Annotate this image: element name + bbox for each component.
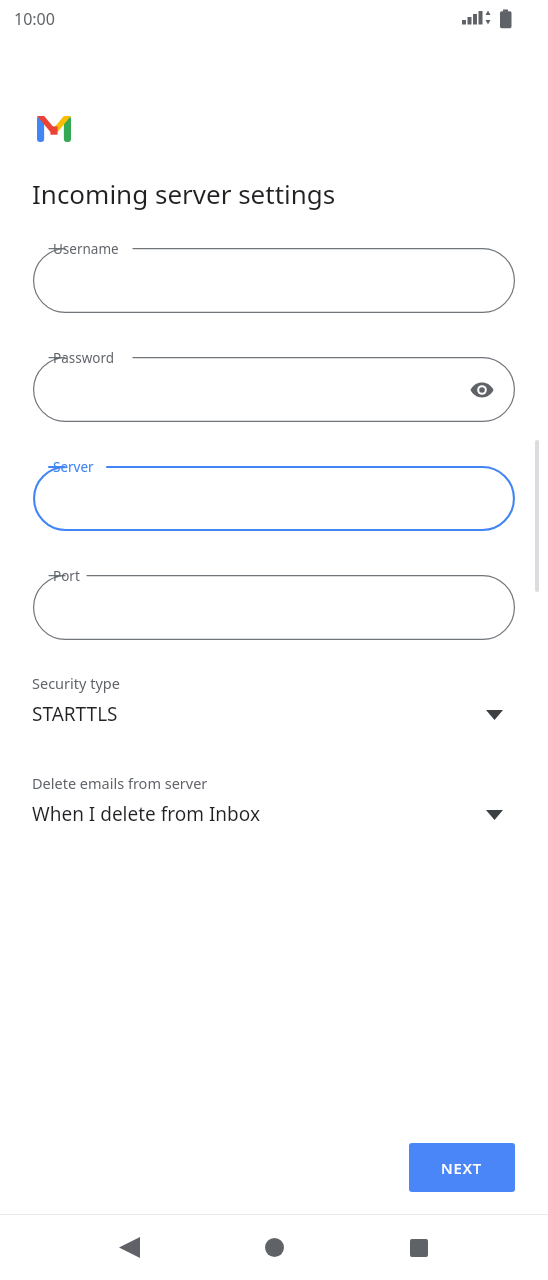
staticText: Incoming server settings xyxy=(32,176,336,211)
staticText: 10:00 xyxy=(14,8,55,30)
staticText: Security type xyxy=(32,673,120,693)
button[interactable]: Recent apps xyxy=(379,1215,459,1280)
button[interactable]: Port xyxy=(33,575,515,640)
button[interactable]: NEXT xyxy=(409,1143,515,1192)
staticText: NEXT xyxy=(441,1158,483,1178)
staticText: Password xyxy=(53,349,115,367)
button[interactable]: Username xyxy=(33,248,515,313)
staticText: Port xyxy=(53,567,80,585)
staticText: STARTTLS xyxy=(32,701,118,727)
button[interactable]: Delete emails from server xyxy=(0,768,548,840)
staticText: Username xyxy=(53,240,119,258)
button[interactable]: Server xyxy=(33,466,515,531)
button[interactable]: Back xyxy=(89,1215,169,1280)
button[interactable]: Security type xyxy=(0,668,548,740)
button[interactable]: Show password xyxy=(465,373,499,407)
button[interactable]: Home xyxy=(234,1215,314,1280)
staticText: Delete emails from server xyxy=(32,773,208,793)
button[interactable]: Password xyxy=(33,357,515,422)
staticText: When I delete from Inbox xyxy=(32,801,260,827)
staticText: Server xyxy=(53,458,94,476)
